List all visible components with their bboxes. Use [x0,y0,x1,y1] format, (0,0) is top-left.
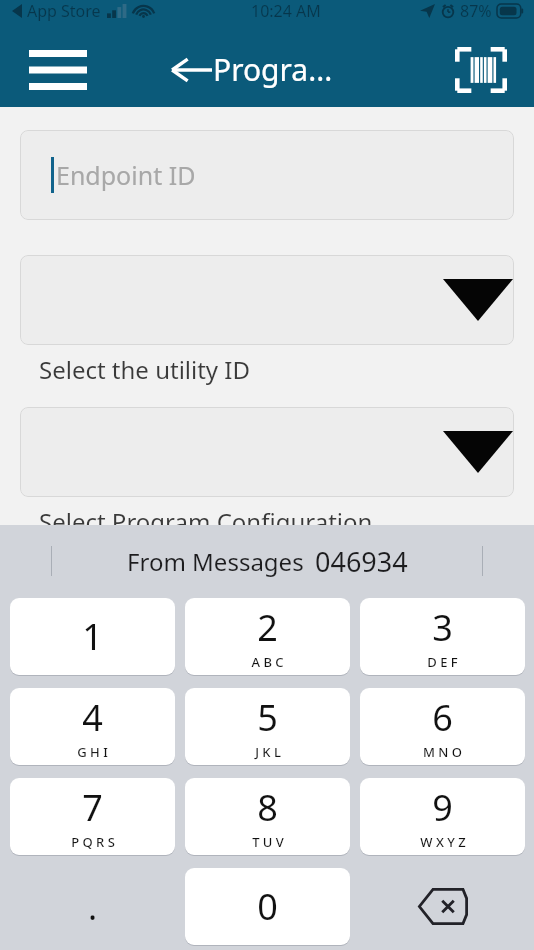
button[interactable]: Backspace [360,868,525,945]
staticText: 0 [257,882,278,931]
staticText: T U V [252,833,284,851]
staticText: J K L [255,743,281,761]
staticText: Progra... [213,49,333,90]
staticText: W X Y Z [420,833,466,851]
staticText: 10:24 AM [251,0,321,22]
staticText: D E F [427,653,458,671]
button[interactable]: Menu [22,42,94,98]
button[interactable]: 8 [185,778,350,855]
button[interactable]: 1 [10,598,175,675]
button[interactable]: Period [10,868,175,945]
staticText: . [88,884,98,930]
button[interactable]: Select the utility ID [20,255,514,345]
button[interactable]: Endpoint ID [20,130,514,220]
staticText: 8 [257,783,278,832]
staticText: 9 [432,783,453,832]
button[interactable]: Select Program Configuration [20,407,514,497]
staticText: 1 [82,612,103,661]
staticText: 6 [432,693,453,742]
staticText: 046934 [315,543,408,580]
staticText: App Store [27,0,101,22]
button[interactable]: 6 [360,688,525,765]
staticText: 2 [257,603,278,652]
staticText: G H I [77,743,108,761]
staticText: 5 [257,693,278,742]
button[interactable]: 4 [10,688,175,765]
staticText: P Q R S [71,833,115,851]
staticText: Endpoint ID [56,158,196,192]
staticText: From Messages [127,545,304,578]
staticText: 3 [432,603,453,652]
button[interactable]: 5 [185,688,350,765]
button[interactable]: 9 [360,778,525,855]
staticText: 87% [460,0,492,22]
button[interactable]: Scan barcode [448,40,514,100]
button[interactable]: 2 [185,598,350,675]
button[interactable]: 7 [10,778,175,855]
staticText: A B C [251,653,284,671]
staticText: 7 [82,783,103,832]
staticText: M N O [423,743,462,761]
staticText: Select the utility ID [39,353,251,386]
button[interactable]: 3 [360,598,525,675]
button[interactable]: Back [160,42,222,98]
staticText: 4 [82,693,103,742]
staticText: Select Program Configuration [39,505,373,538]
button[interactable]: 0 [185,868,350,945]
